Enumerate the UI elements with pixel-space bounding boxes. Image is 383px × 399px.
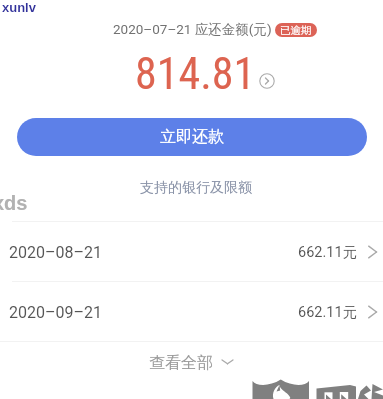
button[interactable]: 2020–08–21 bbox=[0, 222, 383, 281]
button[interactable]: 2020–09–21 bbox=[0, 282, 383, 341]
staticText: 2020–09–21 bbox=[9, 303, 102, 322]
button[interactable]: 查看全部 bbox=[0, 342, 383, 380]
staticText: 814.81 bbox=[135, 48, 256, 100]
staticText: 662.11元 bbox=[298, 243, 358, 261]
staticText: xunlv bbox=[2, 0, 36, 15]
staticText: xds bbox=[0, 192, 28, 214]
staticText: 2020–07–21 应还金额(元) bbox=[113, 21, 272, 38]
staticText: 2020–08–21 bbox=[9, 243, 102, 262]
button[interactable]: View bill detail bbox=[259, 73, 275, 89]
staticText: 已逾期 bbox=[280, 24, 312, 37]
button[interactable]: 立即还款 bbox=[17, 118, 367, 156]
staticText: 查看全部 bbox=[149, 353, 213, 373]
button[interactable]: 已逾期 bbox=[275, 23, 317, 37]
staticText: 662.11元 bbox=[298, 303, 358, 321]
button[interactable]: 支持的银行及限额 bbox=[134, 177, 258, 199]
staticText: 立即还款 bbox=[160, 127, 224, 147]
